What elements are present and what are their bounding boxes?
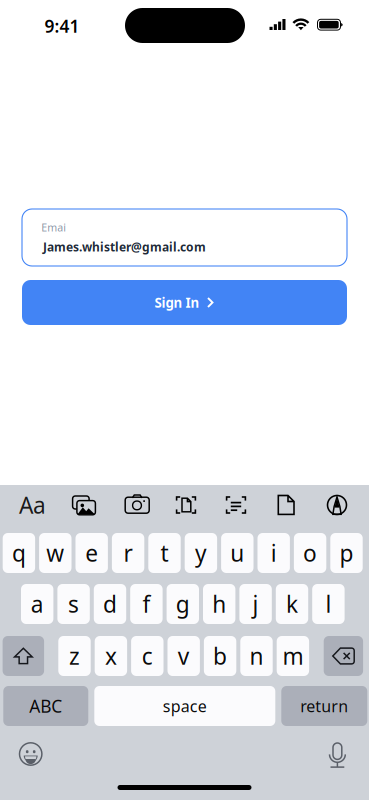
button[interactable]: d [94, 584, 126, 624]
staticText: d [103, 589, 117, 619]
button[interactable]: l [312, 584, 345, 624]
staticText: m [282, 641, 303, 671]
staticText: o [303, 538, 317, 568]
staticText: g [176, 589, 190, 619]
button[interactable]: Text formatting [9, 485, 55, 525]
button[interactable]: m [277, 636, 309, 676]
button[interactable]: y [185, 533, 217, 573]
button[interactable]: w [39, 533, 71, 573]
staticText: b [213, 641, 227, 671]
button[interactable]: n [240, 636, 273, 676]
staticText: James.whistler@gmail.com [43, 239, 206, 255]
button[interactable]: Document [263, 485, 309, 525]
button[interactable]: Sign In [22, 280, 347, 325]
staticText: r [124, 538, 133, 568]
button[interactable]: f [130, 584, 163, 624]
button[interactable]: Shift [3, 636, 44, 676]
button[interactable]: e [75, 533, 108, 573]
button[interactable]: t [148, 533, 181, 573]
staticText: 9:41 [44, 14, 79, 37]
button[interactable]: q [3, 533, 35, 573]
button[interactable]: x [95, 636, 127, 676]
button[interactable]: j [239, 584, 272, 624]
staticText: a [31, 589, 44, 619]
staticText: q [12, 538, 26, 568]
button[interactable]: Scan text [213, 485, 259, 525]
button[interactable]: s [57, 584, 90, 624]
button[interactable]: r [112, 533, 144, 573]
staticText: y [195, 538, 207, 568]
button[interactable]: b [204, 636, 236, 676]
button[interactable]: i [257, 533, 290, 573]
staticText: return [300, 695, 348, 717]
staticText: p [339, 538, 353, 568]
button[interactable]: Camera [114, 485, 160, 525]
button[interactable]: v [167, 636, 200, 676]
button[interactable]: h [203, 584, 235, 624]
staticText: Emai [41, 220, 66, 234]
button[interactable]: ABC [3, 686, 88, 726]
button[interactable]: Markup [314, 485, 360, 525]
staticText: s [68, 589, 79, 619]
button[interactable]: p [330, 533, 363, 573]
button[interactable]: k [276, 584, 308, 624]
staticText: l [325, 589, 331, 619]
staticText: n [249, 641, 263, 671]
button[interactable]: c [131, 636, 163, 676]
button[interactable]: Scan document [163, 485, 209, 525]
staticText: c [142, 641, 153, 671]
button[interactable]: space [94, 686, 275, 726]
button[interactable]: z [58, 636, 91, 676]
staticText: space [163, 695, 207, 717]
button[interactable]: g [167, 584, 199, 624]
staticText: t [160, 538, 168, 568]
staticText: w [46, 538, 64, 568]
staticText: h [212, 589, 226, 619]
staticText: e [85, 538, 98, 568]
button[interactable]: return [281, 686, 367, 726]
button[interactable]: Delete [324, 636, 363, 676]
button[interactable]: a [21, 584, 53, 624]
staticText: f [142, 589, 150, 619]
button[interactable]: Emoji keyboard [19, 742, 43, 766]
staticText: k [286, 589, 298, 619]
button[interactable]: Photo library [61, 485, 107, 525]
staticText: z [69, 641, 80, 671]
staticText: ABC [29, 694, 62, 717]
button[interactable]: Dictation [329, 742, 347, 768]
staticText: u [230, 538, 244, 568]
button[interactable]: o [294, 533, 326, 573]
staticText: x [105, 641, 117, 671]
staticText: v [178, 641, 190, 671]
staticText: i [271, 538, 277, 568]
staticText: j [253, 589, 259, 619]
button[interactable]: u [221, 533, 253, 573]
staticText: Sign In [154, 294, 199, 311]
staticText: Aa [19, 490, 46, 520]
